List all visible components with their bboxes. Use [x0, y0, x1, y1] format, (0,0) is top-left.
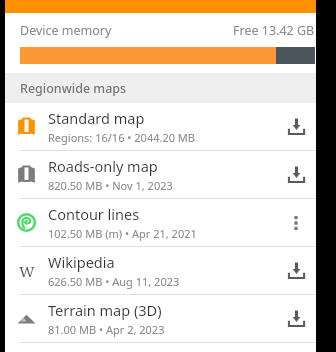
staticText: Free 13.42 GB	[233, 22, 315, 39]
staticText: Roads-only map	[48, 156, 158, 176]
staticText: Standard map	[48, 108, 145, 128]
staticText: 626.50 MB • Aug 11, 2023	[48, 274, 180, 289]
button[interactable]: More options	[276, 199, 316, 246]
staticText: 81.00 MB • Apr 2, 2023	[48, 322, 165, 337]
staticText: Regions: 16/16 • 2044.20 MB	[48, 130, 195, 145]
button[interactable]: Roads-only map	[5, 151, 316, 198]
staticText: Contour lines	[48, 204, 140, 224]
button[interactable]: W	[5, 247, 316, 294]
staticText: Regionwide maps	[20, 80, 127, 97]
staticText: Terrain map (3D)	[48, 300, 162, 320]
staticText: 102.50 MB (m) • Apr 21, 2021	[48, 226, 197, 241]
staticText: W	[19, 261, 35, 281]
button[interactable]: Download	[276, 247, 316, 294]
button[interactable]: Download	[276, 151, 316, 198]
staticText: Device memory	[20, 22, 112, 39]
button[interactable]: Terrain map (3D)	[5, 295, 316, 342]
button[interactable]: Standard map	[5, 103, 316, 150]
button[interactable]: Download	[276, 103, 316, 150]
staticText: Wikipedia	[48, 252, 115, 272]
staticText: 820.50 MB • Nov 1, 2023	[48, 178, 173, 193]
button[interactable]: Contour lines	[5, 199, 316, 246]
button[interactable]: Download	[276, 295, 316, 342]
